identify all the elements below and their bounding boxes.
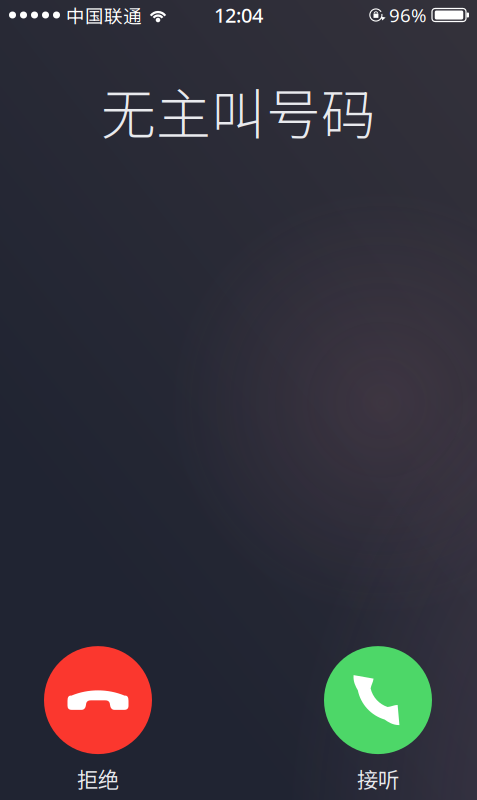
button[interactable]: 拒绝 <box>44 646 152 794</box>
staticText: 96% <box>389 3 427 27</box>
staticText: 无主叫号码 <box>101 71 376 150</box>
staticText: 拒绝 <box>77 763 119 794</box>
staticText: 12:04 <box>214 2 263 28</box>
staticText: 接听 <box>357 763 399 794</box>
button[interactable]: 接听 <box>324 646 432 794</box>
staticText: 中国联通 <box>66 1 142 28</box>
